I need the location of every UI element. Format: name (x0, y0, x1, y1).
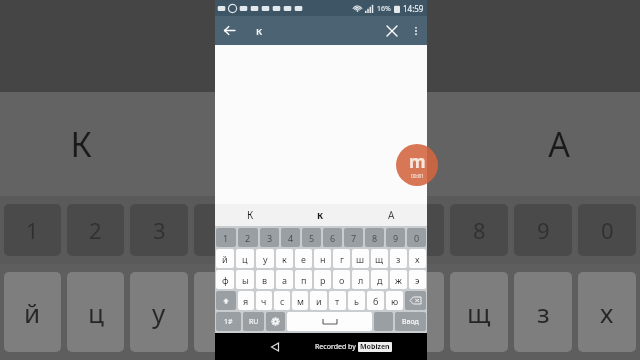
staticText: 8 (473, 215, 486, 245)
button[interactable]: More options (405, 20, 427, 42)
button[interactable]: ю (386, 291, 403, 310)
button[interactable]: ц (236, 249, 254, 268)
button[interactable]: г (333, 249, 350, 268)
button[interactable]: щ (371, 249, 388, 268)
staticText: ш (403, 295, 427, 330)
button[interactable]: Key (374, 312, 393, 331)
button[interactable]: д (371, 270, 388, 289)
button[interactable]: э (409, 270, 426, 289)
button[interactable]: у (256, 249, 274, 268)
button[interactable]: 6 (323, 228, 342, 247)
staticText: 4 (288, 232, 294, 244)
staticText: з (396, 253, 401, 265)
staticText: с (280, 295, 285, 307)
button[interactable]: 5 (302, 228, 321, 247)
button[interactable]: Back (263, 335, 287, 359)
staticText: е (301, 253, 306, 265)
staticText: г (340, 253, 344, 265)
button[interactable]: и (310, 291, 327, 310)
staticText: щ (467, 295, 491, 330)
staticText: ж (395, 274, 402, 286)
button[interactable]: с (274, 291, 290, 310)
button[interactable]: Space (287, 312, 372, 331)
button[interactable]: б (367, 291, 384, 310)
button[interactable]: о (333, 270, 350, 289)
button[interactable]: т (329, 291, 346, 310)
button[interactable]: й (216, 249, 234, 268)
staticText: RU (249, 317, 259, 327)
button[interactable]: Ввод (395, 312, 426, 331)
button[interactable]: х (409, 249, 426, 268)
button[interactable]: А (356, 204, 427, 226)
button[interactable]: к (285, 204, 356, 226)
staticText: 7 (351, 232, 357, 244)
staticText: 6 (330, 232, 336, 244)
button[interactable]: а (276, 270, 293, 289)
staticText: н (320, 253, 326, 265)
staticText: е (280, 295, 295, 330)
button[interactable]: ф (216, 270, 234, 289)
button[interactable]: 3 (260, 228, 279, 247)
staticText: 6 (345, 215, 358, 245)
staticText: 14:59 (403, 3, 424, 14)
staticText: к (216, 295, 230, 330)
button[interactable]: м (292, 291, 308, 310)
staticText: к (282, 253, 287, 265)
staticText: 5 (281, 215, 294, 245)
button[interactable]: я (238, 291, 254, 310)
staticText: 2 (245, 232, 251, 244)
button[interactable]: Shift (216, 291, 236, 310)
staticText: у (263, 253, 268, 265)
button[interactable]: Backspace (405, 291, 426, 310)
button[interactable]: ы (236, 270, 254, 289)
staticText: к (256, 23, 263, 38)
staticText: э (415, 274, 420, 286)
staticText: Ввод (402, 317, 419, 327)
button[interactable]: ь (348, 291, 365, 310)
staticText: п (301, 274, 307, 286)
staticText: л (358, 274, 364, 286)
button[interactable]: 1# (216, 312, 241, 331)
button[interactable]: 0 (407, 228, 426, 247)
staticText: щ (375, 253, 384, 265)
staticText: 1 (223, 232, 229, 244)
staticText: ы (242, 274, 249, 286)
button[interactable]: ж (390, 270, 407, 289)
button[interactable]: н (314, 249, 331, 268)
button[interactable]: Clear (379, 18, 405, 44)
button[interactable]: ш (352, 249, 369, 268)
button[interactable]: ч (256, 291, 272, 310)
staticText: К (70, 121, 92, 167)
staticText: я (243, 295, 249, 307)
staticText: ю (391, 295, 399, 307)
button[interactable]: К (215, 204, 285, 226)
staticText: д (377, 274, 383, 286)
button[interactable]: 2 (238, 228, 258, 247)
button[interactable]: к (276, 249, 293, 268)
staticText: Mobizen (360, 342, 390, 352)
staticText: х (600, 295, 614, 330)
staticText: н (343, 295, 359, 330)
button[interactable]: 7 (344, 228, 363, 247)
staticText: 0 (601, 215, 614, 245)
button[interactable]: 1 (216, 228, 236, 247)
staticText: ц (242, 253, 248, 265)
button[interactable]: в (256, 270, 274, 289)
staticText: ч (261, 295, 267, 307)
button[interactable]: е (295, 249, 312, 268)
button[interactable]: Settings (266, 312, 285, 331)
staticText: 3 (267, 232, 273, 244)
staticText: 4 (217, 215, 230, 245)
staticText: к (317, 208, 324, 222)
button[interactable]: 4 (281, 228, 300, 247)
button[interactable]: п (295, 270, 312, 289)
button[interactable]: з (390, 249, 407, 268)
button[interactable]: RU (243, 312, 264, 331)
button[interactable]: 8 (365, 228, 384, 247)
button[interactable]: Back (215, 16, 244, 45)
staticText: 16% (377, 4, 391, 14)
button[interactable]: л (352, 270, 369, 289)
button[interactable]: р (314, 270, 331, 289)
button[interactable]: 9 (386, 228, 405, 247)
